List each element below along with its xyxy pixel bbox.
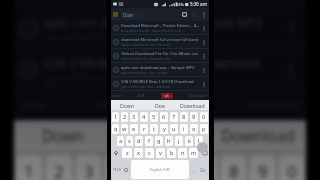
button[interactable]: o: [190, 124, 198, 134]
button[interactable]: 0: [200, 112, 208, 122]
button[interactable]: 6: [160, 112, 168, 122]
button[interactable]: Down: [111, 100, 143, 110]
button[interactable]: 8: [180, 112, 188, 122]
button[interactable]: GTA V MOBILE Beta 1.0.0 FB Download: [111, 77, 209, 91]
button[interactable]: apkz com download pop – Sample MP3: [111, 63, 209, 77]
button[interactable]: e: [130, 124, 138, 134]
staticText: .: [193, 166, 195, 173]
button[interactable]: More: [201, 39, 207, 45]
button[interactable]: g: [155, 136, 163, 146]
staticText: download Minecraft full version full lat…: [121, 37, 199, 42]
button[interactable]: Go: [197, 160, 208, 179]
button[interactable]: q: [112, 124, 119, 134]
button[interactable]: l: [195, 136, 203, 146]
button[interactable]: 2: [121, 112, 128, 122]
button[interactable]: More: [201, 67, 207, 73]
staticText: j: [178, 137, 180, 145]
button[interactable]: m: [189, 148, 198, 158]
staticText: 2GB: [96, 98, 117, 113]
button[interactable]: 3: [130, 112, 138, 122]
button[interactable]: 2: [46, 155, 72, 180]
button[interactable]: Enter: [197, 142, 208, 153]
staticText: gtav-mobile.club › beta › download: [121, 85, 170, 89]
button[interactable]: 6: [163, 155, 188, 180]
button[interactable]: 1: [16, 155, 42, 180]
button[interactable]: 5: [150, 112, 158, 122]
button[interactable]: More options: [200, 11, 207, 18]
button[interactable]: n: [178, 148, 187, 158]
button[interactable]: Backspace: [199, 148, 209, 158]
button[interactable]: k: [185, 136, 193, 146]
staticText: gtav-mobile.club › beta › download: [44, 72, 190, 84]
button[interactable]: Doe: [143, 100, 176, 110]
button[interactable]: u: [170, 124, 178, 134]
button[interactable]: c: [145, 148, 154, 158]
button[interactable]: 8: [221, 155, 246, 180]
button[interactable]: v: [156, 148, 165, 158]
staticText: www.apkmirror.com › minecraft-pocket-ed: [121, 29, 181, 33]
staticText: 5:36 am: [190, 1, 207, 7]
button[interactable]: 7: [192, 155, 217, 180]
button[interactable]: App menu: [113, 12, 118, 17]
button[interactable]: r: [140, 124, 148, 134]
button[interactable]: download Minecraft full version full lat…: [111, 35, 209, 49]
button[interactable]: Camera search: [180, 10, 189, 19]
button[interactable]: f: [145, 136, 153, 146]
staticText: apkz com download pop – Sample MP3: [121, 65, 195, 70]
button[interactable]: More: [201, 81, 207, 87]
button[interactable]: .: [190, 160, 197, 179]
button[interactable]: 7: [170, 112, 178, 122]
button[interactable]: j: [175, 136, 183, 146]
button[interactable]: Shift: [111, 148, 121, 158]
button[interactable]: English (UK): [131, 160, 189, 179]
button[interactable]: a: [117, 136, 124, 146]
button[interactable]: 9: [250, 155, 275, 180]
button[interactable]: Voice search: [190, 10, 199, 19]
button[interactable]: 3: [76, 155, 101, 180]
button[interactable]: ?123: [111, 160, 122, 179]
staticText: 82%: [176, 2, 184, 7]
button[interactable]: d: [135, 136, 143, 146]
staticText: 0: [287, 160, 297, 180]
button[interactable]: Tekken Download File For Cho-Whole Lev: [14, 0, 306, 8]
button[interactable]: Download: [209, 120, 306, 150]
button[interactable]: 0: [279, 155, 304, 180]
button[interactable]: y: [160, 124, 168, 134]
button[interactable]: 9: [190, 112, 198, 122]
button[interactable]: 1: [112, 112, 119, 122]
staticText: Download: [221, 125, 295, 146]
button[interactable]: Doe: [112, 120, 209, 150]
staticText: apk: [175, 99, 191, 111]
staticText: o: [192, 125, 196, 133]
button[interactable]: t: [150, 124, 158, 134]
button[interactable]: apkz com download pop – Sample MP3: [14, 8, 306, 49]
button[interactable]: s: [126, 136, 133, 146]
staticText: 1: [24, 160, 34, 180]
staticText: tekken-mobile.net › download › file: [121, 57, 170, 61]
button[interactable]: Tekken Download File For Cho-Whole Lev: [111, 49, 209, 63]
button[interactable]: Dow: [121, 11, 143, 19]
button[interactable]: 4: [105, 155, 130, 180]
staticText: 7: [172, 113, 176, 121]
button[interactable]: b: [167, 148, 176, 158]
button[interactable]: z: [122, 148, 132, 158]
button[interactable]: GTA V MOBILE Beta 1.0.0 FB Download: [14, 49, 306, 90]
button[interactable]: Down: [14, 120, 112, 150]
button[interactable]: Download Minecraft – Pocket Edition – A…: [111, 21, 209, 35]
button[interactable]: x: [134, 148, 143, 158]
button[interactable]: i: [180, 124, 188, 134]
button[interactable]: www: [111, 91, 209, 100]
button[interactable]: www: [14, 90, 306, 120]
button[interactable]: More: [201, 25, 207, 31]
staticText: Doe: [146, 125, 176, 146]
button[interactable]: w: [121, 124, 128, 134]
button[interactable]: h: [165, 136, 173, 146]
button[interactable]: Emoji: [122, 160, 130, 179]
button[interactable]: p: [200, 124, 208, 134]
button[interactable]: Download: [176, 100, 209, 110]
button[interactable]: 4: [140, 112, 148, 122]
button[interactable]: 5: [134, 155, 159, 180]
button[interactable]: More: [201, 53, 207, 59]
